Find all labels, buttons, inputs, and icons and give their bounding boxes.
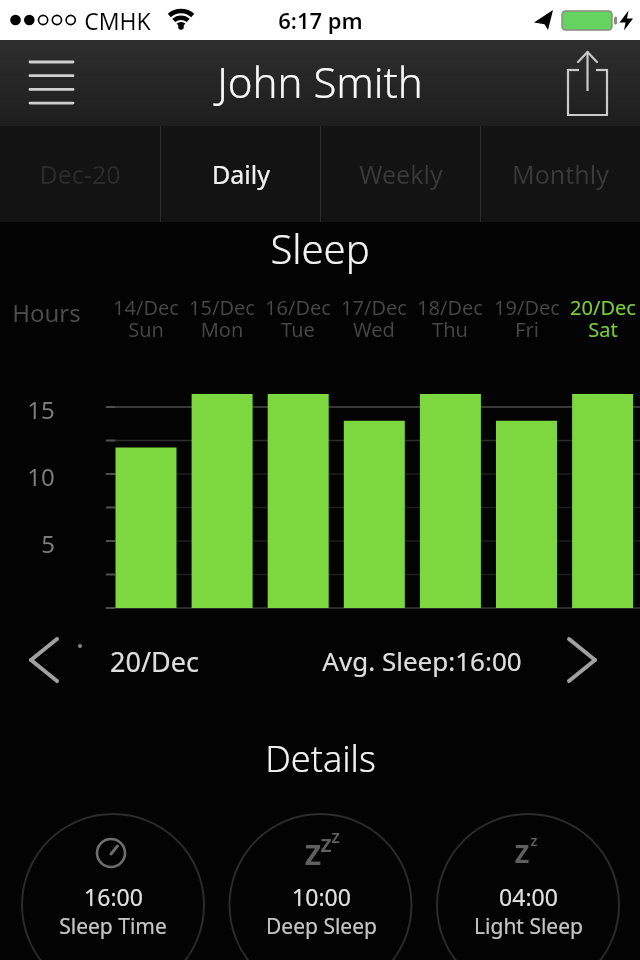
staticText: z (320, 826, 332, 859)
staticText: Sleep (270, 221, 370, 275)
staticText: 04:00 (499, 881, 558, 909)
staticText: 20/Dec Sat (570, 294, 636, 338)
staticText: 16:00 (84, 881, 143, 909)
button[interactable] (20, 632, 70, 688)
staticText: Sleep Time (59, 912, 167, 940)
staticText: John Smith (217, 53, 423, 110)
staticText: Avg. Sleep:16:00 (322, 643, 522, 677)
staticText: 6:17 pm (278, 5, 363, 35)
staticText: Details (265, 734, 376, 774)
staticText: 10:00 (292, 881, 351, 909)
staticText: 14/Dec Sun (113, 294, 179, 338)
staticText: 5 (41, 527, 55, 555)
staticText: 10 (27, 460, 55, 488)
staticText: Dec-20 (39, 157, 121, 191)
button[interactable]: Dec-20 (0, 126, 160, 222)
staticText: 16/Dec Tue (265, 294, 331, 338)
staticText: Daily (212, 157, 270, 191)
staticText: 15/Dec Mon (189, 294, 255, 338)
button[interactable] (22, 54, 80, 114)
staticText: 19/Dec Fri (494, 294, 560, 338)
staticText: z (514, 829, 530, 873)
button[interactable]: Daily (161, 126, 320, 222)
button[interactable]: Monthly (481, 126, 640, 222)
staticText: 20/Dec (110, 643, 199, 677)
button[interactable]: Weekly (321, 126, 480, 222)
staticText: Hours (12, 296, 81, 324)
staticText: Light Sleep (474, 912, 583, 940)
staticText: z (304, 827, 322, 876)
button[interactable] (552, 48, 624, 118)
button[interactable] (560, 632, 610, 688)
staticText: z (530, 830, 538, 850)
staticText: Deep Sleep (266, 912, 377, 940)
staticText: 18/Dec Thu (417, 294, 483, 338)
staticText: z (331, 824, 340, 849)
staticText: CMHK (84, 5, 151, 36)
staticText: Weekly (359, 157, 443, 191)
staticText: Monthly (512, 157, 609, 191)
staticText: 15 (27, 393, 55, 421)
staticText: 17/Dec Wed (341, 294, 407, 338)
